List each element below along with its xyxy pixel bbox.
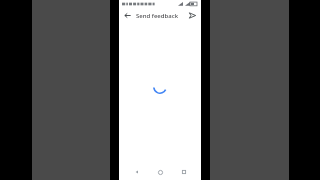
button[interactable]: Recents — [178, 166, 190, 178]
button[interactable]: Send — [187, 10, 198, 21]
button[interactable]: Send feedback — [136, 8, 187, 23]
button[interactable]: Back — [122, 10, 133, 21]
button[interactable]: Back — [131, 166, 143, 178]
button[interactable]: Home — [154, 166, 166, 178]
staticText: Send feedback — [136, 12, 178, 20]
